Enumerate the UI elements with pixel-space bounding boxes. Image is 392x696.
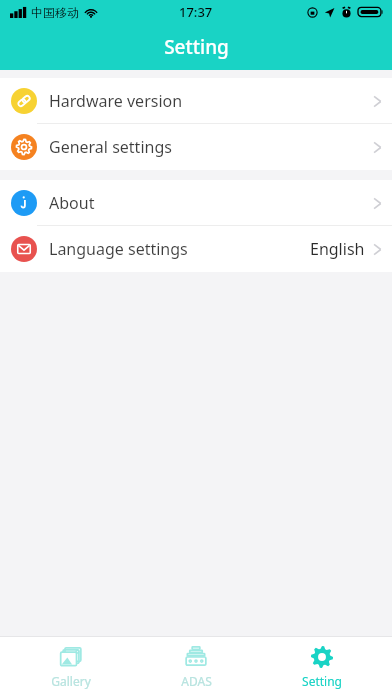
button[interactable]: About [0, 180, 392, 226]
staticText: Setting [164, 34, 229, 60]
staticText: General settings [49, 136, 172, 158]
staticText: 17:37 [179, 3, 213, 21]
button[interactable]: Gallery [16, 637, 126, 696]
staticText: 中国移动 [31, 5, 79, 20]
staticText: Gallery [51, 673, 91, 689]
button[interactable]: ADAS [141, 637, 251, 696]
staticText: Setting [302, 673, 342, 689]
staticText: Hardware version [49, 90, 183, 112]
button[interactable]: Language settings [0, 226, 392, 272]
staticText: English [310, 238, 365, 260]
staticText: ADAS [181, 673, 212, 689]
staticText: About [49, 192, 95, 214]
button[interactable]: Setting [267, 637, 377, 696]
button[interactable]: Hardware version [0, 78, 392, 124]
staticText: Language settings [49, 238, 188, 260]
button[interactable]: General settings [0, 124, 392, 170]
